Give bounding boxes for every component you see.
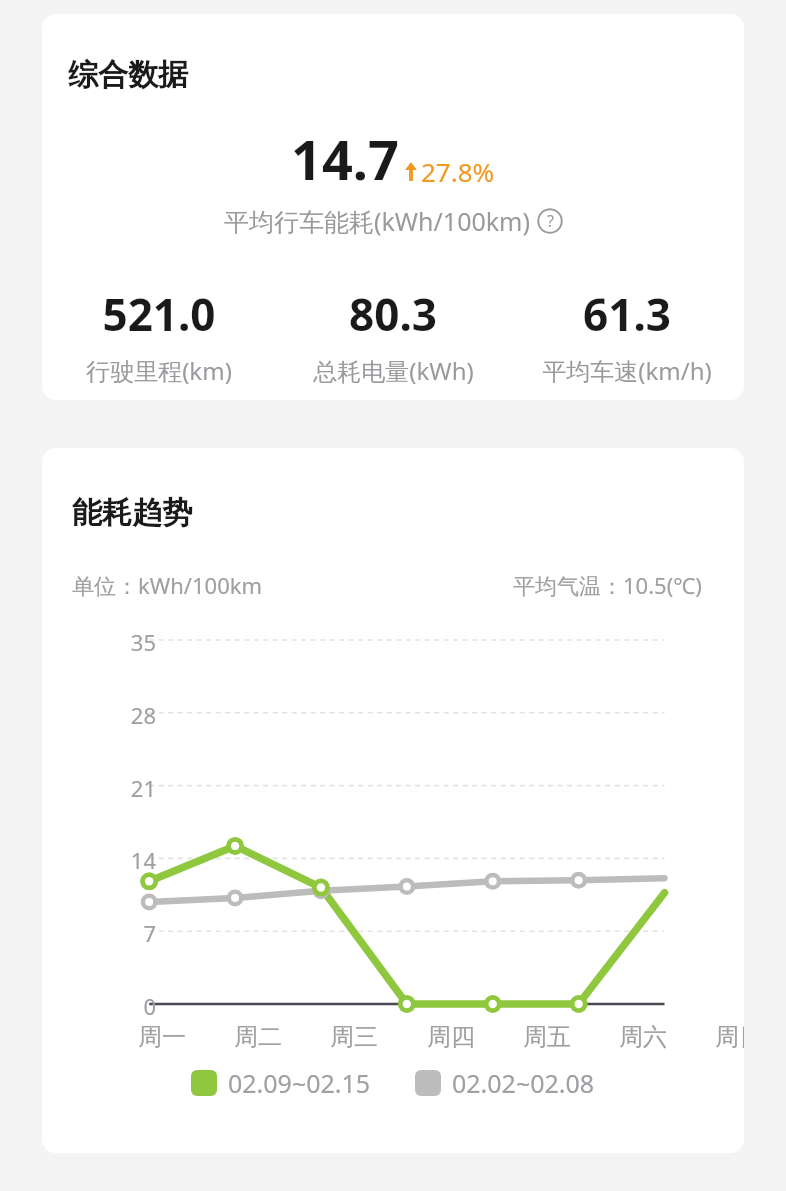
button[interactable]: 能耗趋势 <box>42 448 744 1153</box>
staticText: 平均气温：10.5(℃) <box>513 570 702 600</box>
staticText: 7 <box>120 918 156 948</box>
button[interactable]: 61.3 <box>510 284 744 387</box>
staticText: 平均车速(km/h) <box>542 354 712 387</box>
staticText: 周五 <box>511 1022 583 1052</box>
button[interactable]: 80.3 <box>276 284 510 387</box>
staticText: 521.0 <box>102 284 216 344</box>
staticText: 周三 <box>318 1022 390 1052</box>
staticText: 单位：kWh/100km <box>72 570 263 600</box>
staticText: 21 <box>120 773 156 803</box>
staticText: ? <box>547 210 554 232</box>
staticText: 周四 <box>415 1022 487 1052</box>
staticText: 28 <box>120 700 156 730</box>
staticText: 61.3 <box>583 284 671 344</box>
staticText: 综合数据 <box>68 56 188 94</box>
button[interactable]: 综合数据 <box>42 14 744 400</box>
button[interactable]: 521.0 <box>42 284 276 387</box>
staticText: 周六 <box>607 1022 679 1052</box>
button[interactable]: 帮助说明 <box>537 208 563 234</box>
staticText: 平均行车能耗(kWh/100km) <box>224 204 530 238</box>
staticText: 80.3 <box>349 284 437 344</box>
staticText: 27.8% <box>421 154 495 189</box>
staticText: 35 <box>120 627 156 657</box>
staticText: 周日 <box>703 1022 744 1052</box>
staticText: 14 <box>120 845 156 875</box>
staticText: 0 <box>120 991 156 1021</box>
staticText: 能耗趋势 <box>72 494 192 532</box>
button[interactable]: 02.02~02.08 <box>415 1066 595 1100</box>
staticText: 02.09~02.15 <box>228 1066 371 1100</box>
staticText: 周一 <box>126 1022 198 1052</box>
staticText: 总耗电量(kWh) <box>313 354 474 387</box>
button[interactable]: 02.09~02.15 <box>191 1066 371 1100</box>
staticText: 02.02~02.08 <box>452 1066 595 1100</box>
staticText: 周二 <box>222 1022 294 1052</box>
staticText: 14.7 <box>291 122 399 196</box>
staticText: 行驶里程(km) <box>86 354 232 387</box>
